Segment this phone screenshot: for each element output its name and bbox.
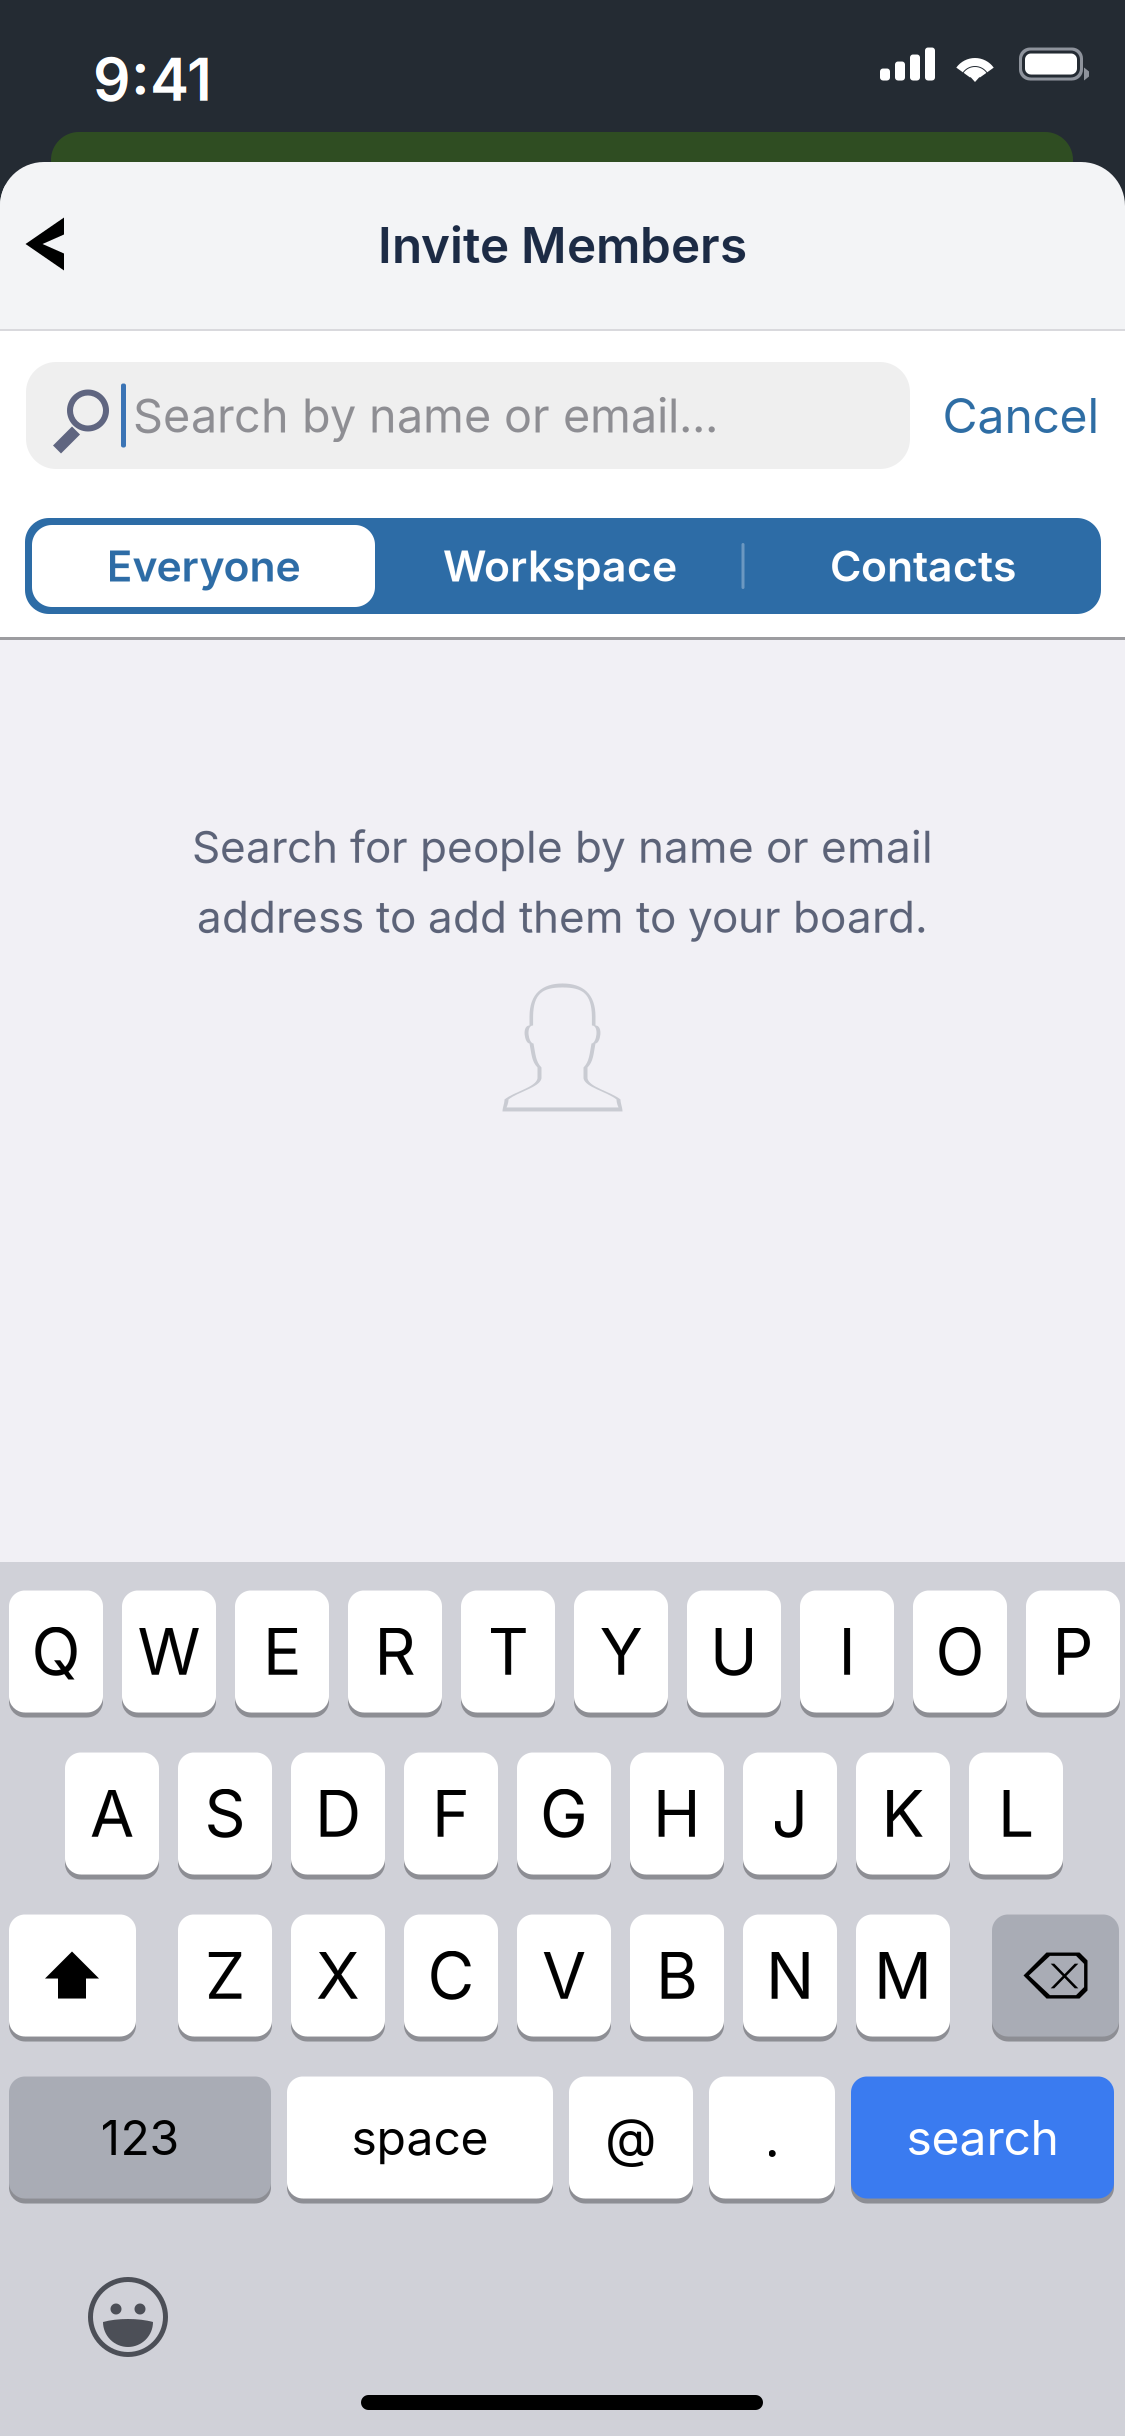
button[interactable]: G [517, 1750, 611, 1877]
button[interactable]: O [913, 1588, 1007, 1715]
button[interactable]: @ [569, 2074, 693, 2201]
button[interactable]: S [178, 1750, 272, 1877]
staticText: Search by name or email... [133, 387, 718, 444]
staticText: T [487, 1613, 528, 1690]
staticText: A [90, 1775, 134, 1852]
staticText: N [766, 1937, 814, 2014]
button[interactable]: Cancel [930, 362, 1112, 469]
button[interactable]: L [969, 1750, 1063, 1877]
staticText: G [540, 1775, 588, 1852]
button[interactable]: Emoji [85, 2274, 171, 2360]
button[interactable]: R [348, 1588, 442, 1715]
button[interactable]: I [800, 1588, 894, 1715]
staticText: L [998, 1775, 1034, 1852]
staticText: S [204, 1775, 245, 1852]
button[interactable]: Delete [992, 1912, 1119, 2039]
staticText: I [838, 1613, 855, 1690]
button[interactable]: N [743, 1912, 837, 2039]
button[interactable]: X [291, 1912, 385, 2039]
staticText: U [710, 1613, 758, 1690]
button[interactable]: C [404, 1912, 498, 2039]
button[interactable]: search [851, 2074, 1114, 2201]
staticText: 123 [100, 2108, 179, 2167]
staticText: E [263, 1613, 301, 1690]
button[interactable]: K [856, 1750, 950, 1877]
button[interactable]: M [856, 1912, 950, 2039]
staticText: address to add them to your board. [197, 890, 928, 943]
staticText: R [374, 1613, 415, 1690]
staticText: F [432, 1775, 470, 1852]
button[interactable]: space [287, 2074, 553, 2201]
button[interactable]: H [630, 1750, 724, 1877]
button[interactable]: A [65, 1750, 159, 1877]
button[interactable]: Q [9, 1588, 103, 1715]
staticText: W [137, 1613, 200, 1690]
button[interactable]: Workspace [378, 518, 741, 614]
staticText: Cancel [942, 386, 1099, 445]
button[interactable]: Contacts [741, 518, 1104, 614]
button[interactable]: Y [574, 1588, 668, 1715]
staticText: Y [599, 1613, 642, 1690]
staticText: X [316, 1937, 360, 2014]
staticText: Everyone [106, 540, 300, 592]
staticText: H [653, 1775, 701, 1852]
button[interactable]: U [687, 1588, 781, 1715]
staticText: Invite Members [378, 215, 747, 275]
button[interactable]: Z [178, 1912, 272, 2039]
staticText: M [874, 1937, 932, 2014]
staticText: P [1052, 1613, 1093, 1690]
button[interactable]: D [291, 1750, 385, 1877]
button[interactable]: P [1026, 1588, 1120, 1715]
staticText: Workspace [443, 540, 677, 592]
staticText: search [906, 2108, 1058, 2167]
staticText: Contacts [830, 540, 1016, 592]
staticText: @ [605, 2105, 657, 2170]
button[interactable]: F [404, 1750, 498, 1877]
button[interactable]: Shift [9, 1912, 136, 2039]
button[interactable]: T [461, 1588, 555, 1715]
staticText: O [935, 1613, 984, 1690]
staticText: . [764, 2105, 779, 2170]
button[interactable]: 123 [9, 2074, 271, 2201]
staticText: K [881, 1775, 924, 1852]
button[interactable]: W [122, 1588, 216, 1715]
staticText: C [427, 1937, 474, 2014]
button[interactable]: V [517, 1912, 611, 2039]
button[interactable]: J [743, 1750, 837, 1877]
button[interactable]: Back [0, 185, 112, 305]
button[interactable]: . [709, 2074, 835, 2201]
staticText: Z [205, 1937, 245, 2014]
staticText: J [771, 1775, 808, 1852]
button[interactable]: Everyone [28, 518, 378, 614]
staticText: 9:41 [93, 44, 212, 115]
staticText: B [656, 1937, 698, 2014]
staticText: V [542, 1937, 586, 2014]
staticText: space [351, 2108, 488, 2167]
button[interactable]: E [235, 1588, 329, 1715]
staticText: Q [31, 1613, 80, 1690]
staticText: D [315, 1775, 361, 1852]
button[interactable]: B [630, 1912, 724, 2039]
staticText: Search for people by name or email [192, 820, 933, 873]
